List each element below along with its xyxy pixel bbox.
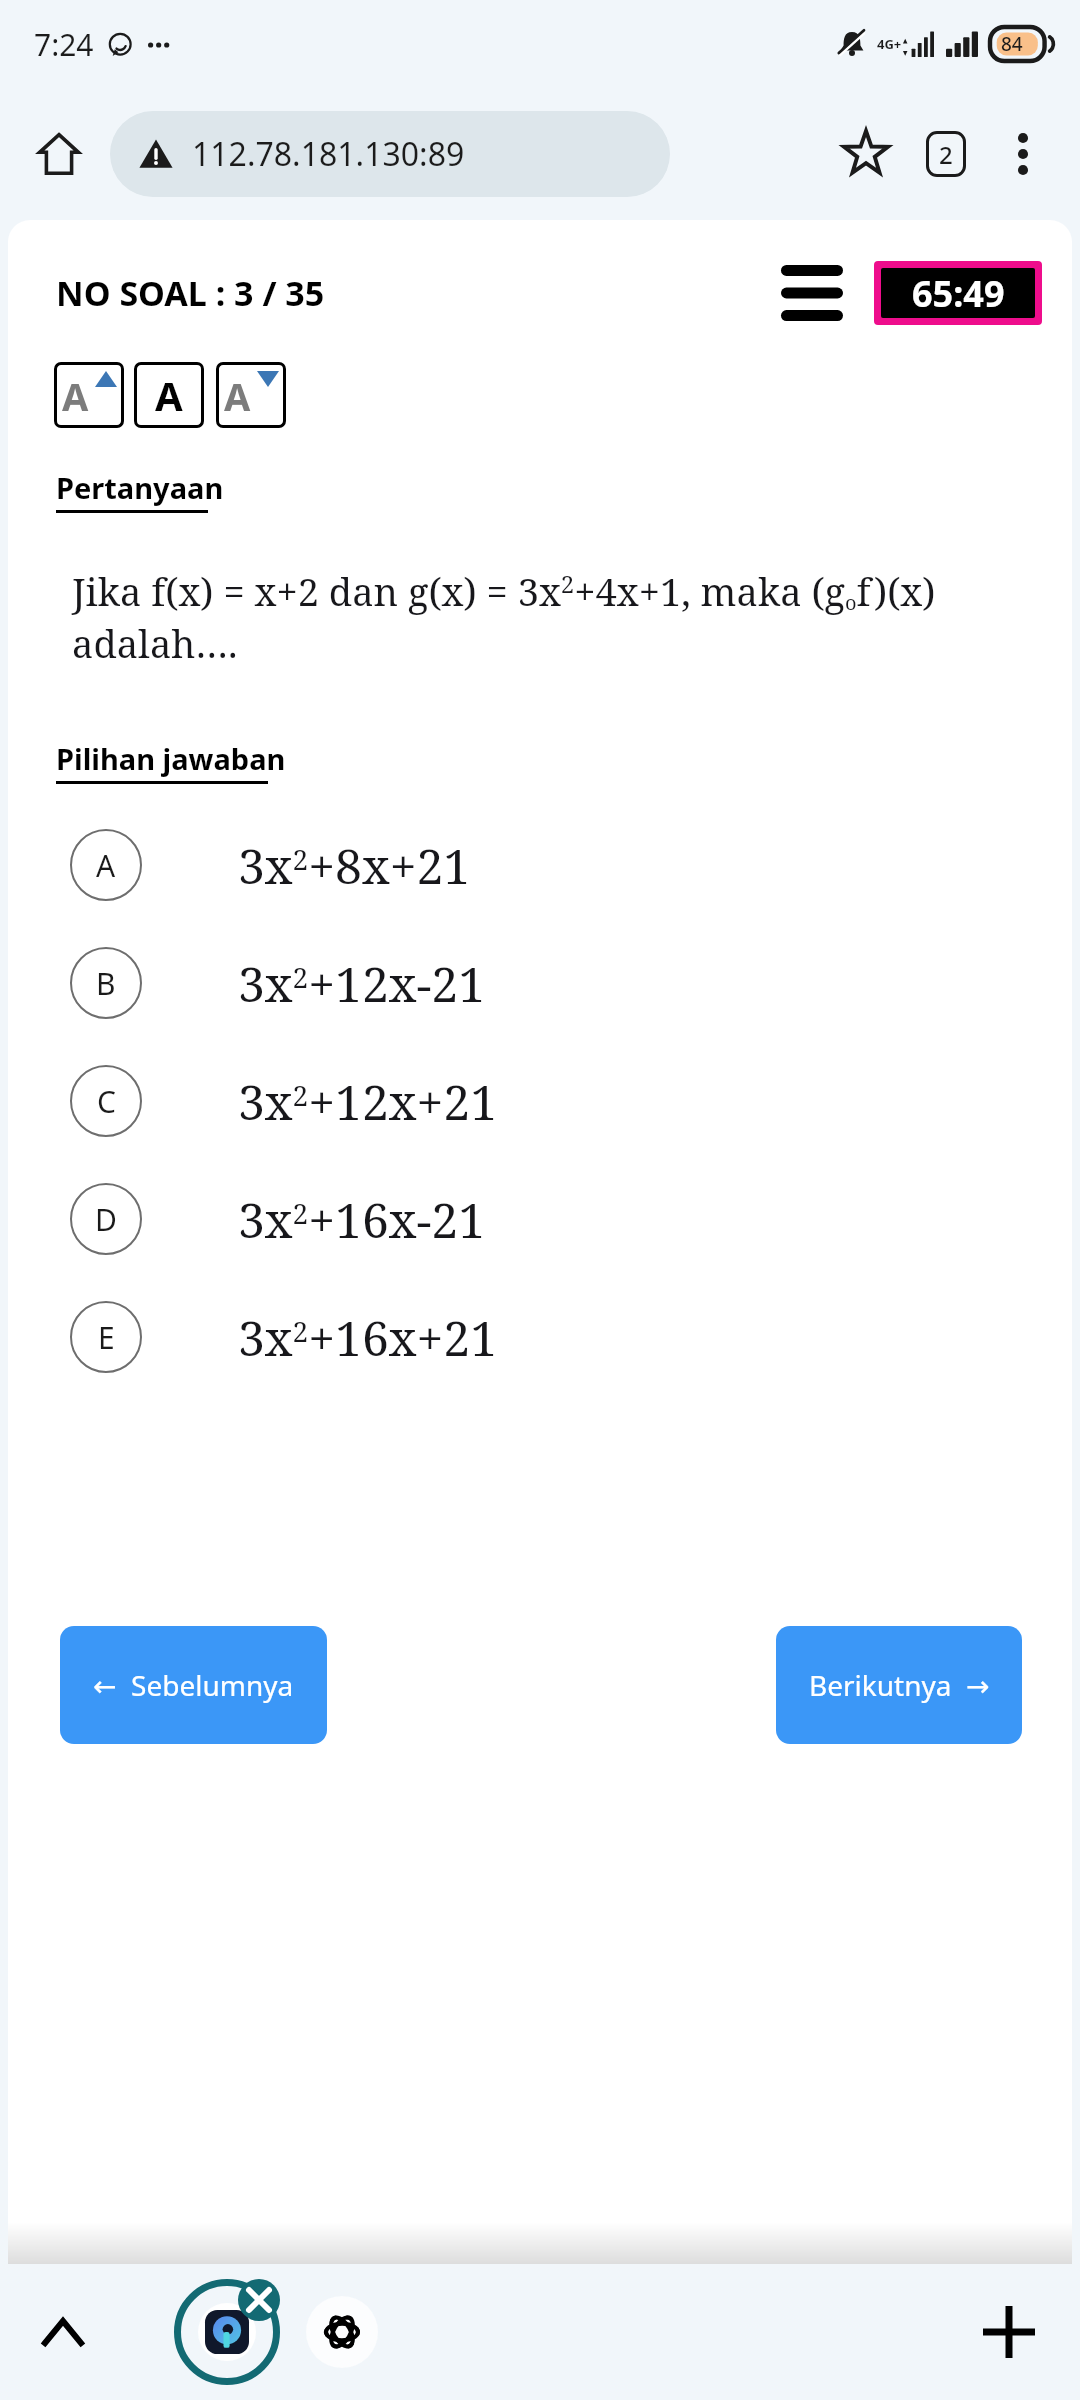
button[interactable]: Home: [26, 121, 92, 187]
button[interactable]: Close tab: [238, 2279, 280, 2321]
button[interactable]: Decrease text size: [216, 362, 286, 428]
button[interactable]: C: [8, 1042, 1072, 1160]
staticText: 7:24: [34, 24, 94, 65]
button[interactable]: Bookmark: [826, 114, 906, 194]
staticText: B: [96, 963, 116, 1004]
button[interactable]: ChatGPT tab: [306, 2296, 378, 2368]
staticText: Berikutnya →: [809, 1666, 990, 1704]
staticText: A: [62, 370, 89, 422]
staticText: Pilihan jawaban: [56, 739, 286, 778]
staticText: 3x2+12x+21: [238, 1069, 497, 1134]
staticText: A: [224, 370, 251, 422]
staticText: 4G+: [877, 35, 902, 53]
staticText: 65:49: [912, 269, 1005, 318]
button[interactable]: Berikutnya →: [776, 1626, 1022, 1744]
staticText: ← Sebelumnya: [93, 1666, 294, 1704]
staticText: Jika f(x) = x+2 dan g(x) = 3x2+4x+1, mak…: [72, 565, 1052, 669]
staticText: 3x2+16x-21: [238, 1187, 486, 1252]
button[interactable]: More options: [986, 117, 1060, 191]
button[interactable]: B: [8, 924, 1072, 1042]
button[interactable]: D: [8, 1160, 1072, 1278]
button[interactable]: New tab: [966, 2289, 1052, 2375]
staticText: E: [98, 1317, 115, 1358]
staticText: D: [95, 1199, 117, 1240]
button[interactable]: A: [8, 806, 1072, 924]
staticText: 112.78.181.130:89: [192, 132, 465, 176]
staticText: NO SOAL : 3 / 35: [56, 270, 325, 316]
staticText: 3x2+16x+21: [238, 1305, 497, 1370]
button[interactable]: Current tab: [172, 2277, 282, 2387]
staticText: 3x2+8x+21: [238, 833, 471, 898]
button[interactable]: Menu: [774, 260, 850, 326]
button[interactable]: E: [8, 1278, 1072, 1396]
button[interactable]: Collapse: [26, 2295, 100, 2369]
button[interactable]: Normal text size: [134, 362, 204, 428]
staticText: 2: [939, 138, 953, 171]
staticText: 3x2+12x-21: [238, 951, 486, 1016]
staticText: A: [96, 845, 116, 886]
button[interactable]: ← Sebelumnya: [60, 1626, 327, 1744]
staticText: C: [97, 1081, 116, 1122]
button[interactable]: 112.78.181.130:89: [110, 111, 670, 197]
button[interactable]: 65:49: [881, 268, 1035, 318]
staticText: 84: [1001, 31, 1023, 57]
button[interactable]: Increase text size: [54, 362, 124, 428]
button[interactable]: Tabs: [906, 114, 986, 194]
staticText: Pertanyaan: [56, 468, 224, 507]
staticText: A: [155, 368, 183, 422]
